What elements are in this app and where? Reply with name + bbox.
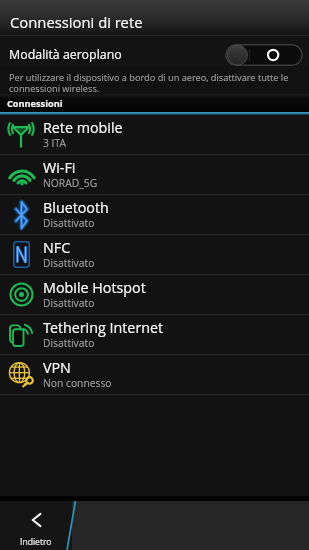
button[interactable]: Mobile Hotspot <box>0 275 309 314</box>
staticText: NFC <box>43 238 71 257</box>
button[interactable]: Modalità aeroplano <box>0 36 309 66</box>
button[interactable]: VPN <box>0 355 309 394</box>
staticText: Wi-Fi <box>43 158 76 177</box>
staticText: Non connesso <box>43 376 112 390</box>
staticText: Disattivato <box>43 216 95 230</box>
staticText: Bluetooth <box>43 198 109 217</box>
staticText: Mobile Hotspot <box>43 278 146 297</box>
button[interactable]: Indietro <box>0 501 72 550</box>
staticText: Tethering Internet <box>43 318 164 337</box>
button[interactable]: Modalità aeroplano, disattivato <box>225 44 303 66</box>
button[interactable]: Rete mobile <box>0 115 309 154</box>
staticText: VPN <box>43 358 71 377</box>
button[interactable]: Tethering Internet <box>0 315 309 354</box>
staticText: Disattivato <box>43 296 95 310</box>
staticText: Disattivato <box>43 256 95 270</box>
button[interactable]: Wi-Fi <box>0 155 309 194</box>
staticText: Indietro <box>20 536 52 548</box>
staticText: Modalità aeroplano <box>9 46 122 63</box>
staticText: NORAD_5G <box>43 176 98 190</box>
staticText: Disattivato <box>43 336 95 350</box>
button[interactable]: NFC <box>0 235 309 274</box>
staticText: Rete mobile <box>43 118 123 137</box>
staticText: Per utilizzare il dispositivo a bordo di… <box>9 71 301 94</box>
staticText: Connessioni di rete <box>10 12 143 32</box>
button[interactable]: Bluetooth <box>0 195 309 234</box>
staticText: Connessioni <box>7 97 63 110</box>
staticText: 3 ITA <box>43 136 66 150</box>
